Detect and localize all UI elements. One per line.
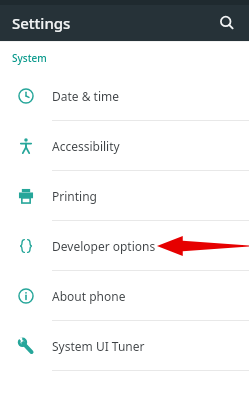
staticText: System UI Tuner: [52, 338, 145, 354]
button[interactable]: Search: [211, 7, 243, 39]
staticText: System: [12, 51, 47, 65]
staticText: Accessibility: [52, 138, 120, 154]
staticText: Settings: [12, 13, 71, 33]
staticText: Printing: [52, 188, 97, 204]
staticText: Date & time: [52, 88, 120, 104]
staticText: About phone: [52, 288, 126, 304]
button[interactable]: Printing: [0, 171, 249, 220]
button[interactable]: Accessibility: [0, 121, 249, 170]
button[interactable]: Date & time: [0, 71, 249, 120]
staticText: Developer options: [52, 238, 156, 254]
button[interactable]: Developer options: [0, 221, 249, 270]
button[interactable]: About phone: [0, 271, 249, 320]
button[interactable]: System UI Tuner: [0, 321, 249, 370]
